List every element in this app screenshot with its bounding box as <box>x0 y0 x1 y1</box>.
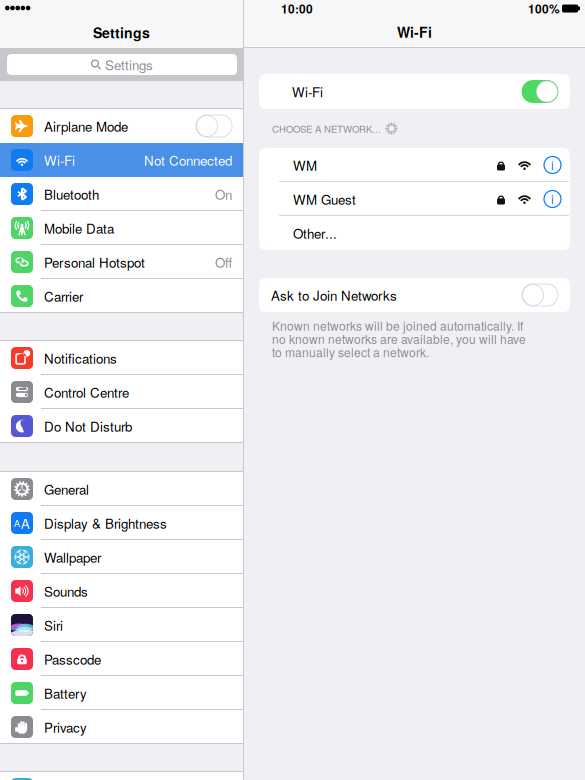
button[interactable]: General <box>0 472 243 506</box>
button[interactable]: A <box>0 506 243 540</box>
staticText: CHOOSE A NETWORK... <box>272 122 381 135</box>
button[interactable]: WM Guest <box>259 182 570 216</box>
staticText: On <box>215 184 232 204</box>
staticText: Control Centre <box>44 382 129 402</box>
staticText: A <box>21 513 30 533</box>
staticText: Wallpaper <box>44 547 101 567</box>
staticText: Display & Brightness <box>44 513 167 533</box>
button[interactable]: Carrier <box>0 279 243 313</box>
button[interactable]: Notifications <box>0 341 243 375</box>
staticText: Mobile Data <box>44 218 114 238</box>
staticText: Wi-Fi <box>44 150 75 170</box>
button[interactable]: Privacy <box>0 710 243 744</box>
staticText: Battery <box>44 683 87 703</box>
staticText: i <box>551 190 554 208</box>
staticText: Not Connected <box>144 150 232 170</box>
button[interactable]: Battery <box>0 676 243 710</box>
button[interactable]: Other... <box>259 216 570 250</box>
staticText: Known networks will be joined automatica… <box>272 317 526 361</box>
staticText: Siri <box>44 615 63 635</box>
staticText: A <box>14 516 20 530</box>
staticText: Privacy <box>44 717 87 737</box>
staticText: Ask to Join Networks <box>271 285 397 305</box>
staticText: Wi-Fi <box>292 82 323 101</box>
staticText: Do Not Disturb <box>44 416 132 436</box>
staticText: Carrier <box>44 286 83 306</box>
staticText: Personal Hotspot <box>44 252 145 272</box>
button[interactable]: Airplane Mode <box>0 109 243 143</box>
staticText: Passcode <box>44 649 101 669</box>
button[interactable]: Sounds <box>0 574 243 608</box>
staticText: i <box>551 156 554 174</box>
staticText: Airplane Mode <box>44 116 128 136</box>
staticText: Sounds <box>44 581 88 601</box>
button[interactable]: Siri <box>0 608 243 642</box>
staticText: Settings <box>93 22 150 42</box>
button[interactable]: Do Not Disturb <box>0 409 243 443</box>
button[interactable]: iCloud <box>0 772 243 780</box>
button[interactable]: Wi-Fi <box>0 143 243 177</box>
button[interactable]: Personal Hotspot <box>0 245 243 279</box>
button[interactable]: Passcode <box>0 642 243 676</box>
staticText: 100% <box>528 0 560 17</box>
staticText: WM Guest <box>293 189 356 209</box>
button[interactable]: WM <box>259 148 570 182</box>
button[interactable]: Bluetooth <box>0 177 243 211</box>
staticText: 10:00 <box>281 0 313 17</box>
staticText: Off <box>215 252 232 272</box>
staticText: Other... <box>293 223 337 243</box>
button[interactable]: Mobile Data <box>0 211 243 245</box>
staticText: Bluetooth <box>44 184 99 204</box>
staticText: Wi-Fi <box>397 22 432 42</box>
staticText: WM <box>293 155 317 175</box>
button[interactable]: Control Centre <box>0 375 243 409</box>
staticText: Notifications <box>44 348 117 368</box>
staticText: General <box>44 479 89 499</box>
button[interactable]: Wallpaper <box>0 540 243 574</box>
staticText: Settings <box>105 55 153 74</box>
